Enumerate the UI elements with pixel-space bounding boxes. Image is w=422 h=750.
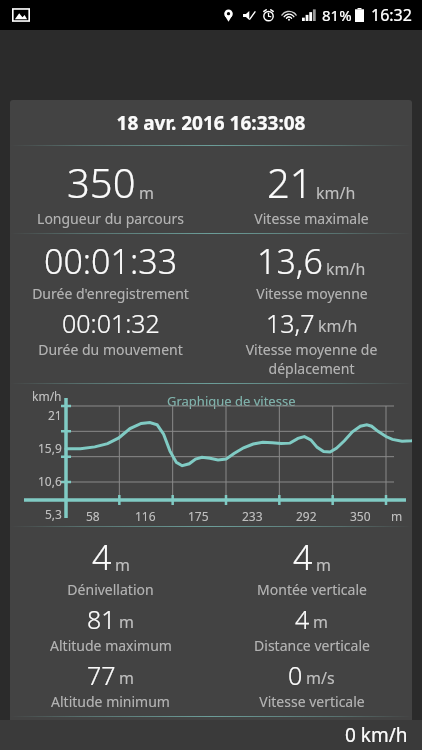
button[interactable]: 81 — [10, 602, 211, 655]
staticText: 116 — [135, 508, 156, 524]
staticText: 350 — [350, 508, 371, 524]
staticText: 15,9 — [38, 440, 62, 456]
staticText: 292 — [296, 508, 317, 524]
staticText: 4 — [295, 602, 310, 636]
staticText: m — [115, 554, 130, 576]
staticText: Dénivellation — [67, 580, 154, 599]
staticText: 16:32 — [371, 4, 412, 26]
button[interactable]: 0 km/h — [0, 720, 422, 750]
staticText: 10,6 — [38, 473, 62, 489]
staticText: 58 — [86, 508, 100, 524]
button[interactable]: 4 — [10, 534, 211, 599]
staticText: Vitesse moyenne — [256, 284, 368, 303]
staticText: 4 — [92, 534, 112, 580]
staticText: 350 — [67, 155, 136, 209]
staticText: Durée du mouvement — [38, 340, 183, 359]
staticText: 21 — [48, 407, 62, 423]
staticText: m — [119, 611, 134, 633]
staticText: m/s — [306, 667, 335, 689]
staticText: km/h — [318, 315, 358, 337]
staticText: m — [391, 508, 403, 524]
button[interactable]: 21 — [211, 155, 412, 228]
staticText: 233 — [242, 508, 263, 524]
staticText: Durée d'enregistrement — [32, 284, 189, 303]
button[interactable]: 77 — [10, 658, 211, 711]
staticText: 5,3 — [45, 506, 62, 522]
button[interactable]: 350 — [10, 155, 211, 228]
staticText: 21 — [267, 155, 313, 209]
button[interactable]: 4 — [211, 602, 412, 655]
staticText: m — [139, 182, 154, 204]
staticText: m — [313, 611, 328, 633]
staticText: Longueur du parcours — [37, 209, 184, 228]
other: Screenshot saved — [12, 6, 30, 24]
button[interactable]: 13,6 — [211, 238, 412, 303]
button[interactable]: 4 — [211, 534, 412, 599]
staticText: km/h — [316, 182, 356, 204]
staticText: 77 — [87, 658, 116, 692]
staticText: Vitesse verticale — [259, 692, 365, 711]
staticText: Distance verticale — [254, 636, 370, 655]
staticText: Altitude minimum — [51, 692, 170, 711]
staticText: 0 km/h — [345, 722, 408, 748]
staticText: Graphique de vitesse — [167, 392, 296, 410]
staticText: m — [119, 667, 134, 689]
button[interactable]: 00:01:33 — [10, 238, 211, 303]
staticText: Vitesse maximale — [254, 209, 369, 228]
staticText: km/h — [326, 258, 366, 280]
staticText: 13,7 — [266, 306, 315, 340]
staticText: m — [316, 554, 331, 576]
staticText: 81% — [322, 5, 352, 25]
staticText: 18 avr. 2016 16:33:08 — [10, 110, 412, 136]
staticText: 00:01:32 — [62, 306, 160, 340]
staticText: Vitesse moyenne de déplacement — [213, 340, 410, 378]
staticText: 81 — [87, 602, 116, 636]
staticText: Montée verticale — [257, 580, 367, 599]
button[interactable]: 13,7 — [211, 306, 412, 378]
staticText: 175 — [188, 508, 209, 524]
staticText: Altitude maximum — [50, 636, 172, 655]
button[interactable]: 0 — [211, 658, 412, 711]
staticText: 13,6 — [257, 238, 323, 284]
button[interactable]: 00:01:32 — [10, 306, 211, 359]
staticText: 00:01:33 — [44, 238, 178, 284]
staticText: 0 — [288, 658, 303, 692]
staticText: 4 — [293, 534, 313, 580]
staticText: km/h — [32, 388, 62, 404]
